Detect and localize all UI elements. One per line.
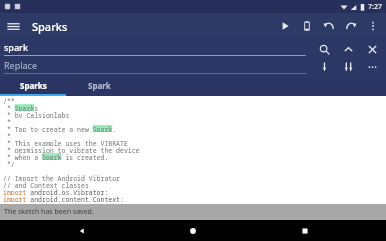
staticText: * [3, 132, 11, 139]
button[interactable]: Home [163, 220, 223, 241]
staticText: * Sparks [3, 104, 39, 111]
button[interactable]: Recent apps [275, 220, 335, 241]
staticText: * Tap to create a new Spark. [3, 125, 117, 132]
button[interactable]: Find [312, 40, 336, 58]
button[interactable]: Sparks [0, 76, 66, 96]
button[interactable]: Find previous [336, 40, 360, 58]
staticText: /** [3, 97, 15, 104]
staticText: The sketch has been saved. [4, 207, 94, 217]
staticText: * This example uses the VIBRATE [3, 139, 128, 146]
button[interactable]: Search options [360, 58, 384, 74]
button[interactable]: Redo [340, 13, 362, 39]
staticText: * when a Spark is created. [3, 153, 109, 160]
staticText: // and Context classes [3, 181, 89, 188]
staticText: import android.content.Context; [3, 195, 124, 202]
button[interactable]: More options [362, 13, 384, 39]
button[interactable]: Select device [296, 13, 318, 39]
button[interactable]: Replace [312, 58, 336, 74]
button[interactable]: Undo [318, 13, 340, 39]
staticText: Spark [88, 80, 111, 91]
staticText: Sparks [20, 80, 47, 91]
staticText: 7:27 [368, 2, 382, 12]
button[interactable]: Run [274, 13, 296, 39]
button[interactable]: Spark [66, 76, 132, 96]
staticText: Replace [4, 59, 37, 71]
staticText: * by Calsignlabs [3, 111, 70, 118]
button[interactable]: Close search [360, 40, 384, 58]
staticText: import android.os.Vibrator; [3, 188, 109, 195]
staticText: Sparks [32, 19, 68, 34]
staticText: spark [4, 41, 28, 53]
button[interactable]: Open navigation drawer [0, 13, 26, 39]
staticText: * [3, 118, 11, 125]
staticText: // Import the Android Vibrator [3, 174, 121, 181]
staticText: * permission to vibrate the device [3, 146, 140, 153]
button[interactable]: Replace all [336, 58, 360, 74]
staticText: */ [3, 160, 15, 167]
button[interactable]: Back [52, 220, 112, 241]
